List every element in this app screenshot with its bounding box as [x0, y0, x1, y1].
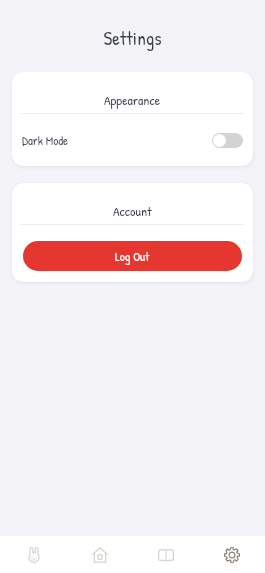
staticText: Settings	[0, 25, 265, 51]
staticText: Appearance	[104, 91, 161, 109]
button[interactable]: Settings	[199, 536, 265, 573]
button[interactable]: Log Out	[23, 241, 242, 271]
button[interactable]: Dark Mode	[12, 114, 253, 166]
button[interactable]: Pets	[0, 536, 67, 573]
staticText: Log Out	[115, 248, 150, 265]
button[interactable]: Library	[133, 536, 199, 573]
staticText: Account	[113, 202, 152, 220]
button[interactable]: Home	[67, 536, 133, 573]
button[interactable]: Dark Mode toggle	[212, 133, 243, 148]
staticText: Dark Mode	[22, 132, 69, 149]
